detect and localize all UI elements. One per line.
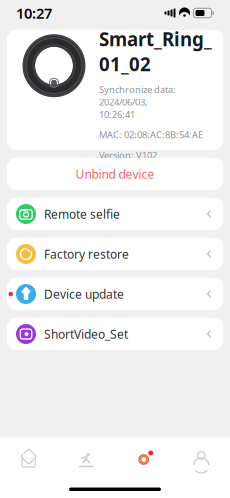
button[interactable]: Profile (172, 437, 230, 481)
button[interactable]: ShortVideo_Set (7, 318, 223, 350)
button[interactable]: Factory restore (7, 238, 223, 270)
staticText: 10:27 (16, 3, 52, 23)
staticText: Version: V102 (99, 149, 157, 161)
staticText: Factory restore (44, 246, 129, 262)
staticText: Unbind device (75, 166, 154, 182)
staticText: Synchronize data: 2024/06/03, 10:26:41 (99, 83, 176, 120)
staticText: ShortVideo_Set (44, 326, 128, 342)
button[interactable]: Unbind device (7, 158, 223, 190)
button[interactable]: Remote selfie (7, 198, 223, 230)
staticText: MAC: 02:08:AC:8B:54:AE (99, 128, 203, 141)
staticText: Remote selfie (44, 206, 120, 222)
button[interactable]: Workout (57, 437, 115, 481)
staticText: Smart_Ring_01_02 (99, 27, 212, 76)
button[interactable]: Device update (7, 278, 223, 310)
button[interactable]: Home (0, 437, 57, 481)
staticText: Device update (44, 286, 124, 302)
button[interactable]: Device (115, 437, 172, 481)
